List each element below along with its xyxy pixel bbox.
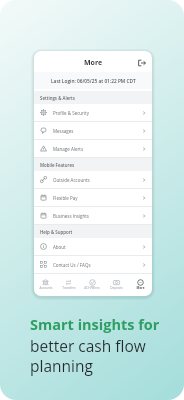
button[interactable]: About: [34, 238, 152, 255]
button[interactable]: Contact Us / FAQs: [34, 256, 152, 273]
staticText: More: [84, 58, 103, 68]
staticText: Last Login: 06/05/25 at 01:22 PM CDT: [51, 78, 136, 85]
button[interactable]: Transfers: [57, 274, 80, 296]
button[interactable]: ACH/Wires: [80, 274, 104, 296]
button[interactable]: Profile & Security: [34, 104, 152, 121]
button[interactable]: Flexible Pay: [34, 189, 152, 206]
button[interactable]: Accounts: [34, 274, 57, 296]
staticText: Contact Us / FAQs: [53, 262, 91, 268]
button[interactable]: More: [128, 274, 152, 296]
staticText: About: [53, 244, 66, 250]
staticText: better cash flow planning: [30, 335, 146, 377]
staticText: Settings & Alerts: [40, 95, 75, 101]
staticText: Messages: [53, 128, 74, 134]
button[interactable]: Deposits: [104, 274, 128, 296]
staticText: Smart insights for: [30, 315, 160, 335]
staticText: Help & Support: [40, 229, 73, 235]
staticText: Deposits: [110, 286, 123, 290]
staticText: ACH/Wires: [84, 286, 100, 290]
button[interactable]: Manage Alerts: [34, 140, 152, 157]
staticText: Flexible Pay: [53, 195, 78, 201]
staticText: Accounts: [39, 286, 53, 290]
staticText: Outside Accounts: [53, 177, 90, 183]
button[interactable]: Messages: [34, 122, 152, 139]
button[interactable]: Outside Accounts: [34, 171, 152, 188]
staticText: Manage Alerts: [53, 146, 84, 152]
staticText: Business Insights: [53, 213, 89, 219]
staticText: More: [136, 286, 145, 290]
staticText: Mobile Features: [40, 162, 75, 168]
staticText: Profile & Security: [53, 110, 89, 116]
staticText: Transfers: [62, 286, 76, 290]
button[interactable]: Log out: [137, 58, 147, 68]
button[interactable]: Business Insights: [34, 207, 152, 224]
